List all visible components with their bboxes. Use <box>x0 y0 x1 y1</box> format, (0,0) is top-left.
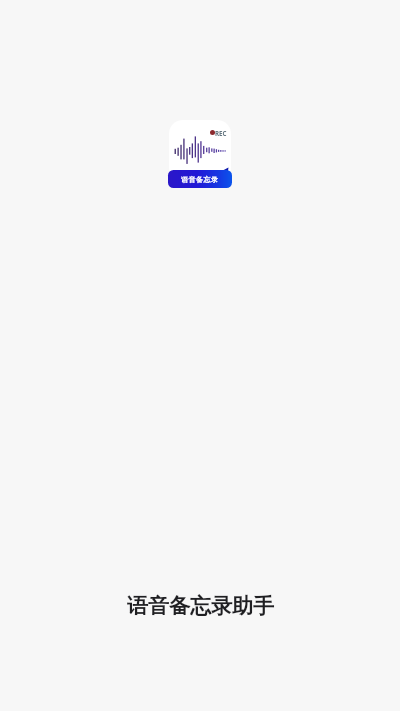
staticText: 语音备忘录 <box>181 175 219 184</box>
staticText: 语音备忘录助手 <box>127 593 274 619</box>
button[interactable]: 语音备忘录助手 <box>168 120 232 188</box>
staticText: REC <box>215 129 227 137</box>
